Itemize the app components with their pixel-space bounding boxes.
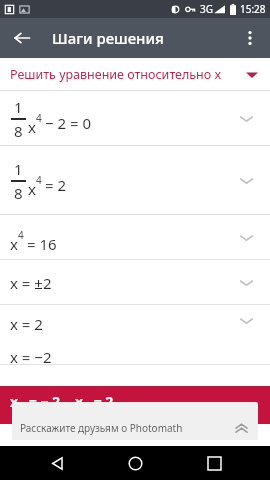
- staticText: x: [10, 234, 18, 254]
- button[interactable]: x: [0, 215, 270, 260]
- staticText: 1: [14, 159, 23, 179]
- staticText: x = 2: [10, 314, 43, 334]
- staticText: = − 2 ,: [25, 392, 75, 411]
- button[interactable]: Расскажите друзьям о Photomath: [12, 424, 258, 440]
- button[interactable]: x = ±2: [0, 260, 270, 305]
- staticText: x: [28, 179, 36, 199]
- staticText: Решить уравнение относительно x: [10, 66, 222, 83]
- staticText: x = ±2: [10, 273, 52, 293]
- staticText: = 2: [90, 392, 114, 411]
- button[interactable]: More options: [232, 20, 268, 56]
- button[interactable]: 1: [0, 146, 270, 215]
- staticText: 4: [36, 111, 42, 125]
- button[interactable]: x: [0, 386, 270, 424]
- staticText: 2: [84, 398, 90, 410]
- button[interactable]: 1: [0, 91, 270, 146]
- button[interactable]: Recent apps: [192, 446, 236, 480]
- staticText: Шаги решения: [52, 28, 164, 48]
- button[interactable]: Back: [35, 446, 79, 480]
- staticText: 1: [14, 97, 23, 117]
- button[interactable]: x = 2: [0, 305, 270, 365]
- staticText: 4: [18, 228, 24, 242]
- staticText: x: [28, 117, 36, 137]
- staticText: 8: [14, 183, 23, 203]
- staticText: x = −2: [10, 347, 52, 365]
- button[interactable]: Back: [4, 20, 40, 56]
- button[interactable]: Home: [113, 446, 157, 480]
- staticText: 3G: [200, 2, 213, 16]
- staticText: − 2 = 0: [45, 113, 92, 133]
- staticText: x: [75, 392, 84, 411]
- staticText: 8: [14, 121, 23, 141]
- staticText: 4: [36, 173, 42, 187]
- staticText: 15:28: [240, 2, 266, 16]
- staticText: x: [10, 392, 19, 411]
- staticText: Расскажите друзьям о Photomath: [20, 421, 183, 435]
- staticText: 1: [19, 398, 25, 410]
- staticText: = 16: [27, 234, 57, 254]
- staticText: = 2: [45, 175, 67, 195]
- button[interactable]: Решить уравнение относительно x: [0, 58, 270, 91]
